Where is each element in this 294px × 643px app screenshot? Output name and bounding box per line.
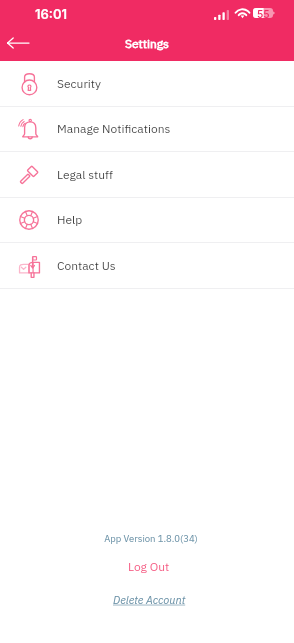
- button[interactable]: Back: [1, 27, 35, 59]
- button[interactable]: Log Out: [108, 555, 190, 579]
- staticText: Delete Account: [113, 593, 186, 607]
- button[interactable]: Security: [0, 61, 294, 106]
- staticText: Security: [57, 76, 102, 92]
- staticText: Legal stuff: [57, 167, 113, 183]
- button[interactable]: Legal stuff: [0, 152, 294, 197]
- staticText: Contact Us: [57, 258, 116, 274]
- staticText: App Version 1.8.0(34): [104, 532, 198, 544]
- staticText: Settings: [125, 36, 169, 52]
- staticText: Log Out: [128, 559, 170, 575]
- staticText: Manage Notifications: [57, 121, 171, 137]
- button[interactable]: Delete Account: [93, 589, 206, 611]
- staticText: Help: [57, 212, 83, 228]
- staticText: 16:01: [35, 6, 68, 22]
- button[interactable]: Manage Notifications: [0, 106, 294, 151]
- button[interactable]: Help: [0, 197, 294, 242]
- button[interactable]: Contact Us: [0, 243, 294, 288]
- staticText: 55: [257, 8, 270, 18]
